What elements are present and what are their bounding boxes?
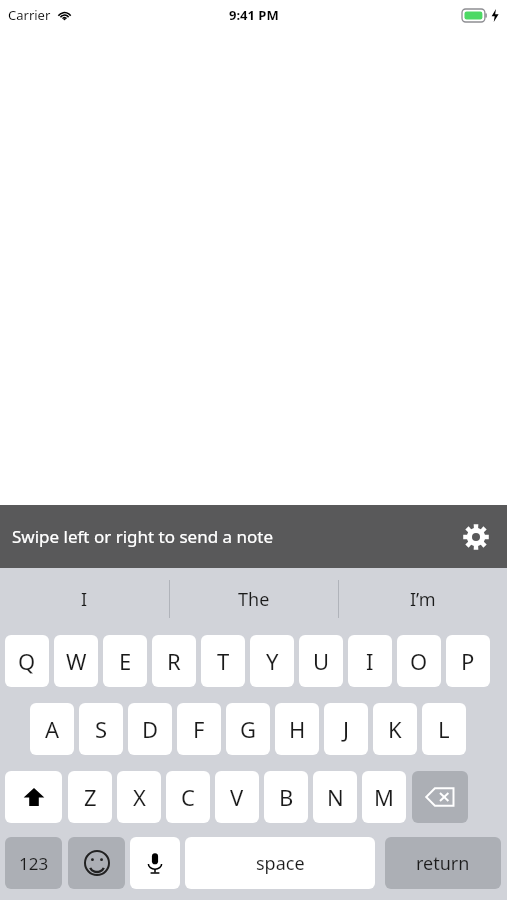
button[interactable]: A (30, 703, 74, 755)
staticText: 9:41 PM (229, 6, 279, 24)
staticText: U (313, 646, 330, 676)
staticText: H (289, 714, 306, 744)
staticText: W (66, 646, 87, 676)
button[interactable]: I (348, 635, 392, 687)
button[interactable]: V (215, 771, 259, 823)
staticText: G (240, 714, 257, 744)
button[interactable]: Shift (5, 771, 62, 823)
staticText: I’m (410, 587, 436, 612)
staticText: Y (266, 646, 279, 676)
button[interactable]: Backspace (412, 771, 468, 823)
button[interactable]: return (385, 837, 501, 889)
staticText: K (388, 714, 402, 744)
button[interactable]: The (170, 568, 338, 630)
staticText: C (181, 782, 195, 812)
button[interactable]: space (185, 837, 375, 889)
button[interactable]: Y (250, 635, 294, 687)
staticText: S (95, 714, 108, 744)
button[interactable]: 123 (5, 837, 62, 889)
staticText: D (142, 714, 159, 744)
staticText: Carrier (8, 6, 51, 24)
staticText: J (343, 714, 350, 744)
staticText: return (416, 851, 470, 876)
staticText: T (217, 646, 230, 676)
button[interactable]: X (117, 771, 161, 823)
button[interactable]: M (362, 771, 406, 823)
button[interactable]: W (54, 635, 98, 687)
button[interactable]: C (166, 771, 210, 823)
button[interactable]: O (397, 635, 441, 687)
button[interactable]: Z (68, 771, 112, 823)
button[interactable]: L (422, 703, 466, 755)
button[interactable]: N (313, 771, 357, 823)
staticText: Q (18, 646, 36, 676)
staticText: I (81, 587, 88, 612)
staticText: I (366, 646, 374, 676)
staticText: Z (84, 782, 97, 812)
button[interactable]: B (264, 771, 308, 823)
button[interactable]: Dictation (130, 837, 180, 889)
button[interactable]: G (226, 703, 270, 755)
staticText: The (238, 587, 270, 612)
staticText: O (410, 646, 428, 676)
button[interactable]: T (201, 635, 245, 687)
staticText: Swipe left or right to send a note (12, 525, 274, 548)
button[interactable]: H (275, 703, 319, 755)
staticText: X (133, 782, 146, 812)
button[interactable]: K (373, 703, 417, 755)
button[interactable]: Emoji (68, 837, 125, 889)
staticText: L (438, 714, 450, 744)
staticText: F (193, 714, 205, 744)
button[interactable]: Settings (459, 520, 493, 554)
button[interactable]: U (299, 635, 343, 687)
button[interactable]: F (177, 703, 221, 755)
staticText: M (374, 782, 394, 812)
staticText: V (230, 782, 244, 812)
staticText: A (45, 714, 60, 744)
button[interactable]: P (446, 635, 490, 687)
staticText: E (119, 646, 132, 676)
staticText: space (256, 851, 305, 876)
staticText: B (279, 782, 294, 812)
button[interactable]: I (0, 568, 169, 630)
button[interactable]: Q (5, 635, 49, 687)
button[interactable]: D (128, 703, 172, 755)
button[interactable]: S (79, 703, 123, 755)
button[interactable]: E (103, 635, 147, 687)
staticText: N (327, 782, 344, 812)
staticText: P (461, 646, 475, 676)
button[interactable]: R (152, 635, 196, 687)
button[interactable]: J (324, 703, 368, 755)
button[interactable]: I’m (339, 568, 507, 630)
staticText: 123 (19, 852, 49, 875)
staticText: R (167, 646, 181, 676)
